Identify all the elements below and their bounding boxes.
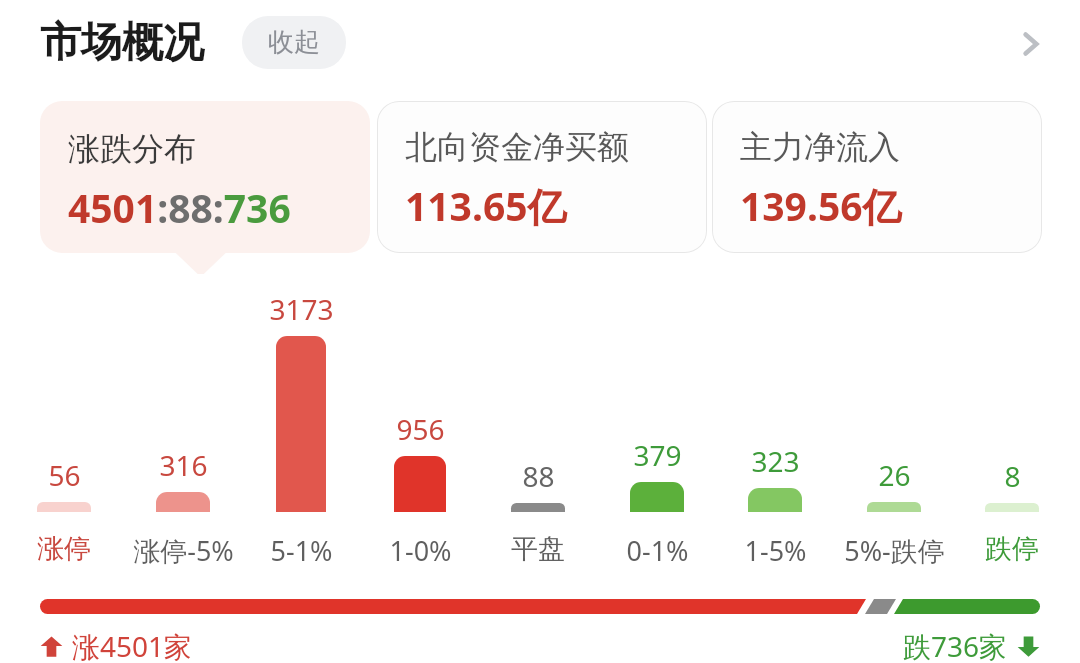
staticText: 市场概况 [40, 17, 204, 69]
button[interactable]: 北向资金净买额 [377, 101, 707, 253]
staticText: 1-5% [744, 532, 807, 569]
staticText: 3173 [269, 290, 334, 328]
staticText: 379 [633, 436, 682, 474]
staticText: 北向资金净买额 [405, 127, 629, 167]
button[interactable] [37, 502, 91, 512]
staticText: 涨4501家 [72, 627, 193, 663]
staticText: 平盘 [511, 532, 565, 566]
staticText: 1-0% [389, 532, 452, 569]
staticText: 956 [396, 410, 445, 448]
button[interactable] [630, 482, 684, 512]
staticText: 0-1% [626, 532, 689, 569]
button[interactable] [394, 456, 446, 512]
button[interactable] [276, 336, 326, 512]
button[interactable] [748, 488, 802, 512]
staticText: 跌停 [985, 532, 1039, 566]
button[interactable]: 收起 [242, 16, 346, 69]
staticText: 跌736家 [903, 627, 1008, 663]
staticText: 收起 [268, 26, 320, 59]
staticText: 主力净流入 [740, 127, 900, 167]
staticText: 113.65亿 [405, 179, 567, 232]
staticText: 56 [48, 456, 81, 494]
staticText: 88 [522, 457, 555, 495]
staticText: 316 [159, 446, 208, 484]
button[interactable]: 涨跌分布 [40, 101, 370, 277]
staticText: 139.56亿 [740, 179, 902, 232]
button[interactable] [156, 492, 210, 512]
staticText: 26 [878, 456, 911, 494]
staticText: 8 [1004, 457, 1021, 495]
staticText: 5%-跌停 [844, 532, 945, 569]
button[interactable]: 主力净流入 [712, 101, 1042, 253]
button[interactable]: Open market overview [1003, 16, 1059, 72]
staticText: 涨停 [37, 532, 91, 566]
button[interactable] [985, 503, 1039, 512]
staticText: 涨停-5% [133, 532, 234, 569]
button[interactable]: 涨4501家 [40, 627, 193, 663]
button[interactable]: 跌736家 [903, 627, 1040, 663]
staticText: 323 [751, 442, 800, 480]
staticText: 涨跌分布 [68, 129, 196, 169]
button[interactable]: Advance decline ratio bar [40, 599, 1040, 614]
staticText: 4501:88:736 [68, 181, 291, 234]
staticText: 5-1% [270, 532, 333, 569]
button[interactable] [867, 502, 921, 512]
button[interactable] [511, 503, 565, 512]
